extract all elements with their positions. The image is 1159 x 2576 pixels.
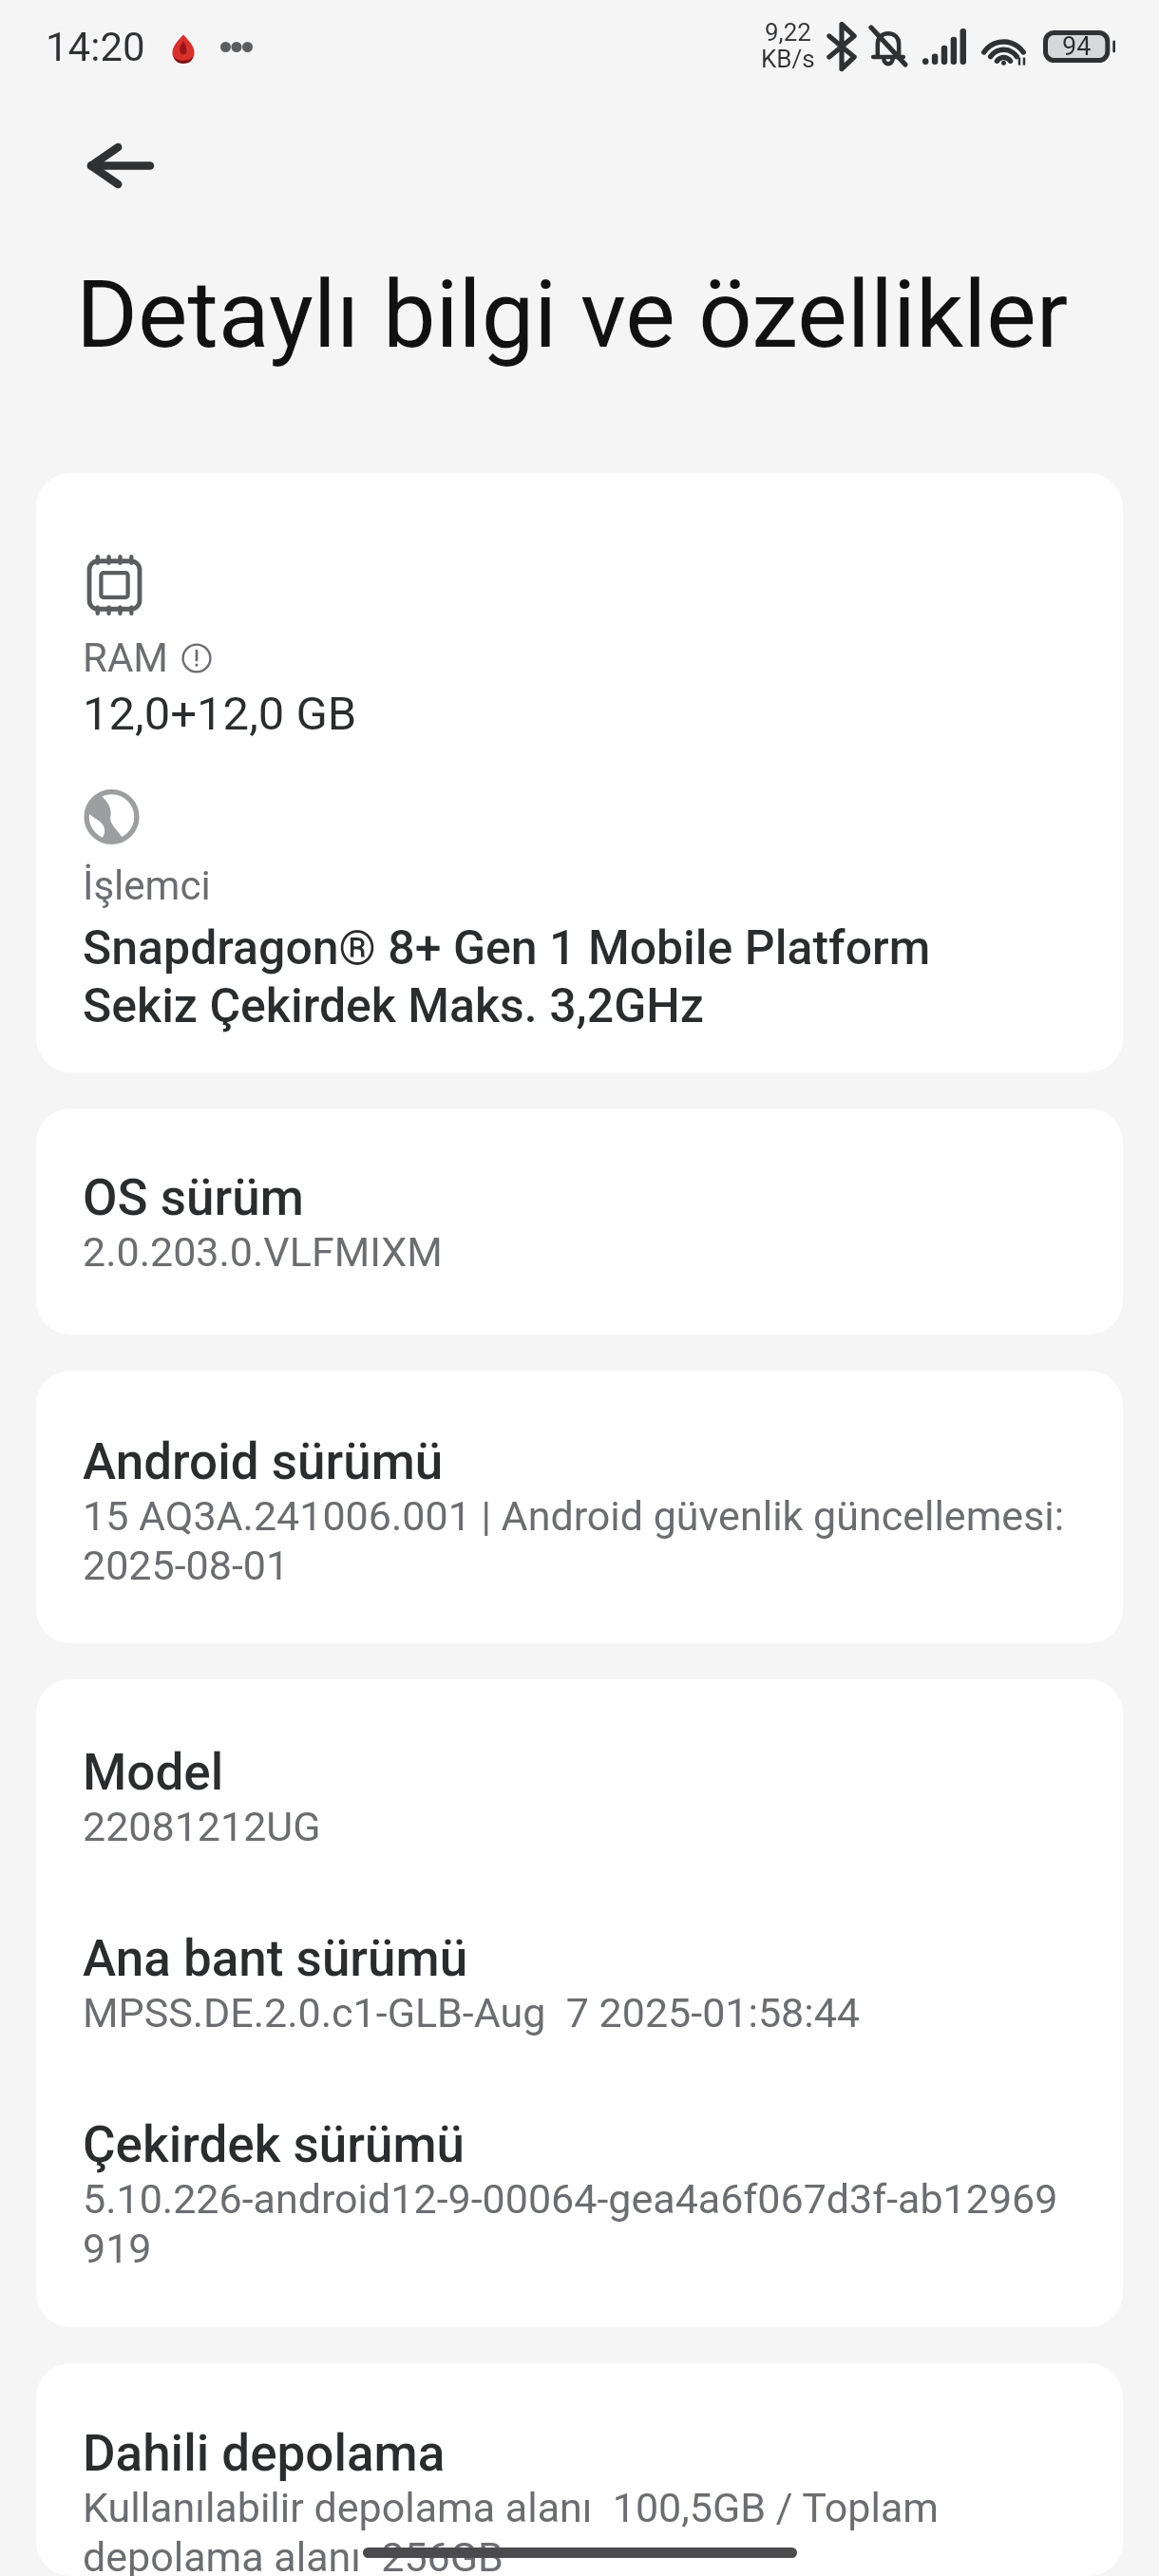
- staticText: Detaylı bilgi ve özellikler: [76, 265, 1069, 368]
- staticText: Snapdragon® 8+ Gen 1 Mobile Platform Sek…: [83, 919, 931, 1034]
- staticText: Kullanılabilir depolama alanı 100,5GB / …: [83, 2483, 940, 2576]
- button[interactable]: Android sürümü: [36, 1371, 1123, 1643]
- staticText: Model: [83, 1743, 224, 1802]
- staticText: KB/s: [761, 47, 815, 73]
- button[interactable]: RAM: [36, 473, 1123, 1072]
- staticText: 5.10.226-android12-9-00064-gea4a6f067d3f…: [83, 2174, 1058, 2273]
- staticText: OS sürüm: [83, 1168, 304, 1227]
- button[interactable]: Dahili depolama: [36, 2363, 1123, 2576]
- button[interactable]: OS sürüm: [36, 1108, 1123, 1335]
- staticText: Dahili depolama: [83, 2424, 446, 2483]
- staticText: MPSS.DE.2.0.c1-GLB-Aug 7 2025-01:58:44: [83, 1988, 860, 2037]
- staticText: 94: [1062, 31, 1092, 62]
- staticText: 9,22: [765, 20, 811, 47]
- staticText: 12,0+12,0 GB: [83, 688, 357, 741]
- button[interactable]: Çekirdek sürümü: [36, 2076, 1123, 2327]
- staticText: Ana bant sürümü: [83, 1929, 468, 1988]
- staticText: İşlemci: [83, 862, 211, 910]
- staticText: 15 AQ3A.241006.001 | Android güvenlik gü…: [83, 1491, 1065, 1590]
- staticText: Android sürümü: [83, 1432, 444, 1491]
- button[interactable]: Model: [36, 1679, 1123, 1890]
- button[interactable]: Back: [68, 113, 173, 218]
- staticText: Çekirdek sürümü: [83, 2115, 465, 2174]
- staticText: 14:20: [46, 24, 145, 70]
- staticText: 2.0.203.0.VLFMIXM: [83, 1227, 443, 1277]
- staticText: 22081212UG: [83, 1802, 321, 1851]
- button[interactable]: RAM bilgisi: [181, 643, 212, 673]
- staticText: RAM: [83, 634, 168, 682]
- button[interactable]: Ana bant sürümü: [36, 1890, 1123, 2076]
